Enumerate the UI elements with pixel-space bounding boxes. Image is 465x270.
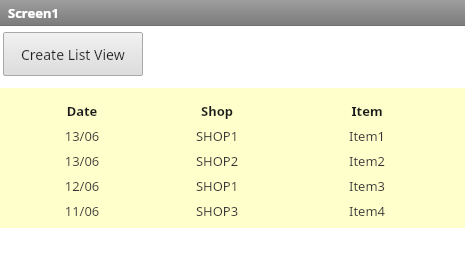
staticText: 13/06 (22, 152, 142, 170)
staticText: Item2 (292, 152, 442, 170)
staticText: 11/06 (22, 202, 142, 220)
button[interactable]: Create List View (3, 32, 143, 76)
staticText: Item3 (292, 177, 442, 195)
button[interactable]: Date (0, 88, 465, 228)
staticText: SHOP1 (142, 127, 292, 145)
staticText: Shop (142, 102, 292, 120)
staticText: 12/06 (22, 177, 142, 195)
staticText: Date (22, 102, 142, 120)
staticText: Create List View (21, 45, 125, 64)
staticText: Screen1 (8, 4, 59, 22)
staticText: Item4 (292, 202, 442, 220)
staticText: Item (292, 102, 442, 120)
staticText: SHOP1 (142, 177, 292, 195)
staticText: SHOP2 (142, 152, 292, 170)
staticText: Item1 (292, 127, 442, 145)
staticText: 13/06 (22, 127, 142, 145)
staticText: SHOP3 (142, 202, 292, 220)
